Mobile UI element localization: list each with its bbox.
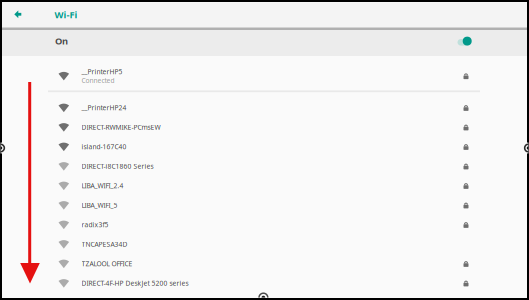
button[interactable]: __PrinterHP5 [0, 56, 529, 91]
staticText: Wi-Fi [54, 8, 77, 21]
staticText: TZALOOL OFFICE [81, 259, 132, 268]
button[interactable]: LIBA_WIFI_5 [0, 195, 529, 215]
button[interactable]: __PrinterHP24 [0, 98, 529, 117]
button[interactable]: LIBA_WIFI_2.4 [0, 176, 529, 195]
staticText: On [55, 35, 68, 47]
button[interactable]: TNCAPESA34D [0, 234, 529, 254]
staticText: Connected [81, 76, 114, 85]
staticText: LIBA_WIFI_2.4 [81, 181, 123, 190]
button[interactable]: Back [3, 2, 33, 27]
staticText: TNCAPESA34D [81, 240, 127, 249]
button[interactable]: DIRECT-RWMIKE-PCmsEW [0, 117, 529, 137]
staticText: LIBA_WIFI_5 [81, 201, 117, 210]
staticText: radix3f5 [81, 220, 108, 229]
staticText: DIRECT-RWMIKE-PCmsEW [81, 123, 160, 132]
staticText: __PrinterHP24 [81, 103, 126, 112]
staticText: DIRECT-4F-HP DeskJet 5200 series [81, 279, 188, 288]
staticText: __PrinterHP5 [81, 67, 122, 76]
button[interactable]: DIRECT-i8C1860 Series [0, 156, 529, 176]
button[interactable]: DIRECT-4F-HP DeskJet 5200 series [0, 273, 529, 293]
staticText: island-167C40 [81, 142, 126, 151]
button[interactable]: Wi-Fi on [457, 35, 477, 51]
button[interactable]: TZALOOL OFFICE [0, 254, 529, 273]
button[interactable]: radix3f5 [0, 215, 529, 234]
staticText: DIRECT-i8C1860 Series [81, 162, 153, 171]
button[interactable]: island-167C40 [0, 137, 529, 156]
